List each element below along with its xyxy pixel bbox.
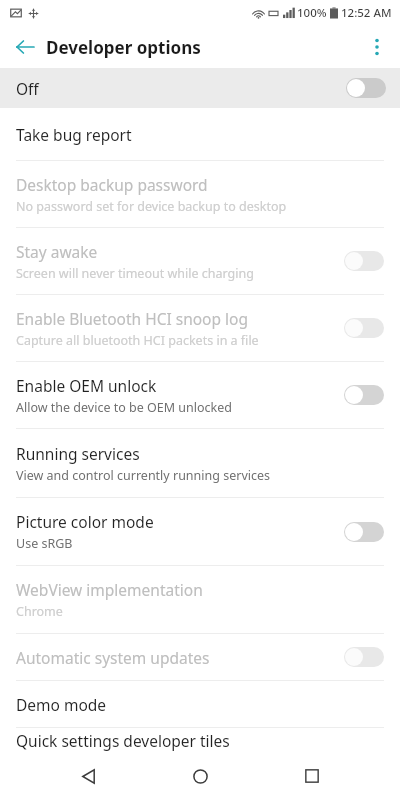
button[interactable]: Enable Bluetooth HCI snoop log [0,295,400,361]
button[interactable]: Toggle [346,78,386,98]
staticText: Enable Bluetooth HCI snoop log [16,308,248,329]
button[interactable]: Running services [0,429,400,497]
staticText: Chrome [16,603,63,620]
staticText: Running services [16,443,140,464]
button[interactable]: Enable OEM unlock [0,362,400,428]
staticText: Desktop backup password [16,174,208,195]
staticText: WebView implementation [16,579,203,600]
staticText: Use sRGB [16,535,73,552]
button[interactable]: Stay awake [0,228,400,294]
button[interactable]: Picture color mode [0,498,400,565]
staticText: Automatic system updates [16,647,210,668]
button[interactable]: Back [8,30,42,64]
button[interactable]: Toggle [344,318,384,338]
button[interactable]: Back [64,752,112,800]
button[interactable]: WebView implementation [0,566,400,633]
staticText: Quick settings developer tiles [16,730,230,751]
button[interactable]: Automatic system updates [0,634,400,680]
staticText: Take bug report [16,124,132,145]
staticText: 12:52 AM [341,5,392,21]
staticText: Developer options [46,36,201,59]
staticText: Allow the device to be OEM unlocked [16,399,232,416]
staticText: Capture all bluetooth HCI packets in a f… [16,332,259,349]
staticText: Enable OEM unlock [16,375,157,396]
button[interactable]: More options [360,30,394,64]
staticText: Screen will never timeout while charging [16,265,254,282]
button[interactable]: Quick settings developer tiles [0,728,400,752]
staticText: No password set for device backup to des… [16,198,287,215]
button[interactable]: Toggle [344,647,384,667]
staticText: Off [16,78,39,99]
button[interactable]: Demo mode [0,681,400,727]
staticText: 100% [297,5,327,21]
button[interactable]: Toggle [344,251,384,271]
button[interactable]: Take bug report [0,108,400,160]
staticText: View and control currently running servi… [16,467,271,484]
button[interactable]: Desktop backup password [0,161,400,227]
button[interactable]: Toggle [344,385,384,405]
button[interactable]: Off [0,68,400,108]
staticText: Picture color mode [16,511,154,532]
button[interactable]: Recents [288,752,336,800]
button[interactable]: Home [176,752,224,800]
staticText: Demo mode [16,694,107,715]
button[interactable]: Toggle [344,522,384,542]
staticText: Stay awake [16,241,98,262]
